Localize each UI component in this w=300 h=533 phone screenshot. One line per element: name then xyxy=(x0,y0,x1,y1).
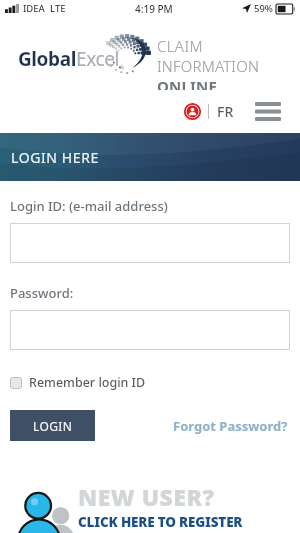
button[interactable]: Remember login ID xyxy=(10,372,146,393)
staticText: LTE xyxy=(50,2,66,15)
button[interactable]: NEW USER? xyxy=(0,479,300,533)
staticText: FR xyxy=(217,102,234,121)
staticText: NEW USER? xyxy=(78,481,215,512)
staticText: Password: xyxy=(10,284,74,302)
staticText: ® xyxy=(120,65,125,72)
button[interactable]: FR xyxy=(214,96,237,127)
staticText: IDEA xyxy=(23,2,45,15)
staticText: Remember login ID xyxy=(29,374,146,391)
staticText: 4:19 PM xyxy=(135,2,173,16)
staticText: ONLINE xyxy=(157,76,218,96)
staticText: Global xyxy=(18,46,76,72)
button[interactable] xyxy=(10,223,290,263)
button[interactable] xyxy=(10,310,290,350)
staticText: Excel xyxy=(76,46,119,72)
button[interactable]: LOGIN xyxy=(10,410,95,441)
staticText: Login ID: (e-mail address) xyxy=(10,197,168,215)
button[interactable]: Menu xyxy=(249,95,287,128)
staticText: INFORMATION xyxy=(157,56,260,76)
staticText: 59% xyxy=(254,2,273,15)
staticText: LOGIN HERE xyxy=(11,148,99,167)
staticText: CLICK HERE TO REGISTER xyxy=(78,513,243,531)
staticText: CLAIM xyxy=(157,36,203,56)
staticText: Forgot Password? xyxy=(173,417,288,435)
button[interactable]: Forgot Password? xyxy=(171,413,290,439)
staticText: LOGIN xyxy=(33,418,73,434)
button[interactable]: Account xyxy=(180,97,205,126)
